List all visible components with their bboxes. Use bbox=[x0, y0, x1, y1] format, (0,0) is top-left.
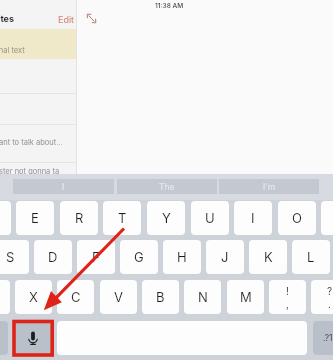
staticText: O bbox=[292, 210, 302, 226]
button[interactable]: R bbox=[60, 201, 98, 235]
staticText: J bbox=[221, 249, 229, 265]
staticText: M bbox=[240, 289, 252, 305]
button[interactable]: ! bbox=[269, 280, 306, 314]
staticText: T bbox=[118, 210, 127, 226]
staticText: X bbox=[29, 289, 38, 305]
staticText: ? bbox=[327, 285, 333, 297]
staticText: K bbox=[264, 249, 273, 265]
staticText: E bbox=[31, 210, 39, 226]
staticText: .?123 bbox=[323, 333, 333, 343]
button[interactable]: K bbox=[249, 240, 287, 274]
button[interactable]: F bbox=[77, 240, 115, 274]
button[interactable]: B bbox=[142, 280, 179, 314]
button[interactable]: O bbox=[278, 201, 316, 235]
button[interactable]: L bbox=[292, 240, 330, 274]
staticText: ant to talk about... bbox=[0, 138, 63, 147]
button[interactable]: Y bbox=[147, 201, 185, 235]
button[interactable]: I bbox=[234, 201, 272, 235]
staticText: G bbox=[134, 249, 144, 265]
staticText: B bbox=[156, 289, 165, 305]
button[interactable]: W bbox=[0, 201, 11, 235]
button[interactable]: The bbox=[117, 179, 217, 194]
button[interactable]: Dictation bbox=[13, 321, 53, 355]
button[interactable]: Numbers and symbols bbox=[313, 321, 333, 355]
button[interactable]: Expand note bbox=[86, 13, 97, 24]
button[interactable]: Z bbox=[0, 280, 10, 314]
button[interactable]: T bbox=[103, 201, 141, 235]
button[interactable]: X bbox=[15, 280, 52, 314]
staticText: F bbox=[92, 249, 100, 265]
staticText: N bbox=[198, 289, 208, 305]
staticText: H bbox=[177, 249, 187, 265]
button[interactable]: P bbox=[321, 201, 333, 235]
button[interactable]: U bbox=[191, 201, 229, 235]
button[interactable]: H bbox=[163, 240, 201, 274]
button[interactable]: Edit bbox=[58, 14, 75, 25]
button[interactable]: C bbox=[57, 280, 94, 314]
staticText: I bbox=[62, 182, 65, 192]
staticText: ster not gonna ta bbox=[0, 167, 60, 176]
staticText: I'm bbox=[263, 182, 276, 192]
button[interactable]: N bbox=[184, 280, 221, 314]
staticText: S bbox=[6, 249, 15, 265]
staticText: L bbox=[307, 249, 315, 265]
button[interactable]: M bbox=[227, 280, 264, 314]
staticText: V bbox=[114, 289, 123, 305]
staticText: . bbox=[328, 298, 331, 310]
staticText: The bbox=[159, 182, 175, 192]
button[interactable]: ? bbox=[311, 280, 333, 314]
staticText: , bbox=[286, 298, 289, 310]
staticText: Notes bbox=[0, 13, 14, 24]
staticText: R bbox=[75, 210, 84, 226]
button[interactable]: E bbox=[16, 201, 54, 235]
staticText: inal text bbox=[0, 46, 25, 55]
button[interactable]: S bbox=[0, 240, 29, 274]
staticText: U bbox=[205, 210, 215, 226]
staticText: I bbox=[251, 210, 255, 226]
staticText: C bbox=[71, 289, 81, 305]
button[interactable]: J bbox=[206, 240, 244, 274]
button[interactable]: G bbox=[120, 240, 158, 274]
staticText: ! bbox=[286, 285, 289, 297]
staticText: 11:38 AM bbox=[155, 2, 184, 10]
button[interactable]: I'm bbox=[219, 179, 319, 194]
staticText: Y bbox=[162, 210, 171, 226]
button[interactable]: V bbox=[100, 280, 137, 314]
button[interactable] bbox=[0, 29, 76, 59]
button[interactable]: D bbox=[34, 240, 72, 274]
staticText: D bbox=[48, 249, 58, 265]
